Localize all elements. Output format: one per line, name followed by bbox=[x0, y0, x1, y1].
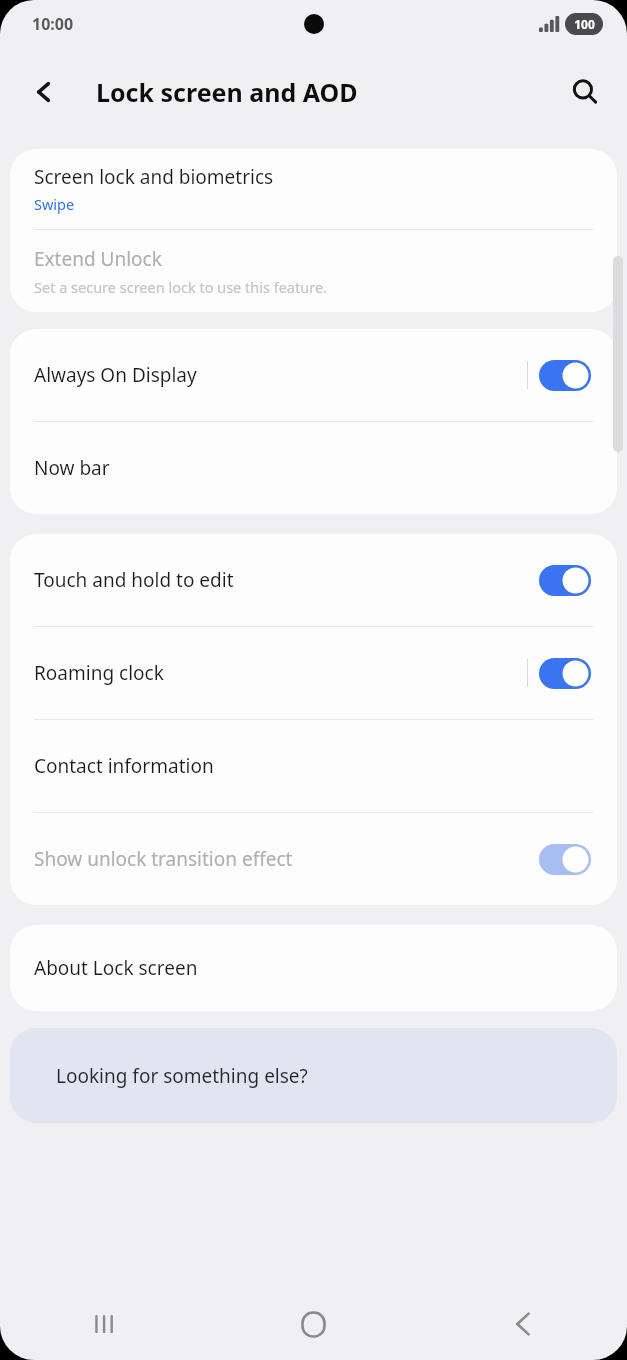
button[interactable]: Back bbox=[418, 1288, 627, 1360]
button[interactable]: Toggle bbox=[539, 844, 591, 875]
staticText: Contact information bbox=[34, 753, 214, 779]
staticText: Touch and hold to edit bbox=[34, 567, 527, 593]
staticText: 10:00 bbox=[32, 13, 74, 35]
button[interactable]: Home bbox=[209, 1288, 418, 1360]
button[interactable]: Toggle bbox=[539, 658, 591, 689]
button[interactable]: Back bbox=[18, 66, 70, 118]
button[interactable]: Recents bbox=[0, 1288, 209, 1360]
staticText: Now bar bbox=[34, 455, 110, 481]
staticText: Lock screen and AOD bbox=[96, 75, 358, 109]
button[interactable]: Show unlock transition effect bbox=[10, 813, 617, 905]
staticText: Extend Unlock bbox=[34, 246, 162, 272]
button[interactable]: Extend Unlock bbox=[10, 230, 617, 312]
staticText: 100 bbox=[574, 16, 595, 32]
staticText: Roaming clock bbox=[34, 660, 527, 686]
button[interactable]: Looking for something else? bbox=[10, 1028, 617, 1123]
button[interactable]: Toggle bbox=[539, 360, 591, 391]
button[interactable]: Screen lock and biometrics bbox=[10, 149, 617, 229]
button[interactable]: Contact information bbox=[10, 720, 617, 812]
staticText: Set a secure screen lock to use this fea… bbox=[34, 277, 327, 297]
button[interactable]: About Lock screen bbox=[10, 925, 617, 1011]
button[interactable]: Now bar bbox=[10, 422, 617, 514]
staticText: About Lock screen bbox=[34, 955, 198, 981]
staticText: Screen lock and biometrics bbox=[34, 164, 274, 190]
staticText: Show unlock transition effect bbox=[34, 846, 527, 872]
staticText: Swipe bbox=[34, 194, 75, 214]
button[interactable]: Always On Display bbox=[10, 329, 617, 421]
button[interactable]: Search bbox=[559, 66, 611, 118]
staticText: Always On Display bbox=[34, 362, 527, 388]
button[interactable]: Touch and hold to edit bbox=[10, 534, 617, 626]
staticText: Looking for something else? bbox=[56, 1063, 308, 1089]
button[interactable]: Roaming clock bbox=[10, 627, 617, 719]
button[interactable]: Toggle bbox=[539, 565, 591, 596]
